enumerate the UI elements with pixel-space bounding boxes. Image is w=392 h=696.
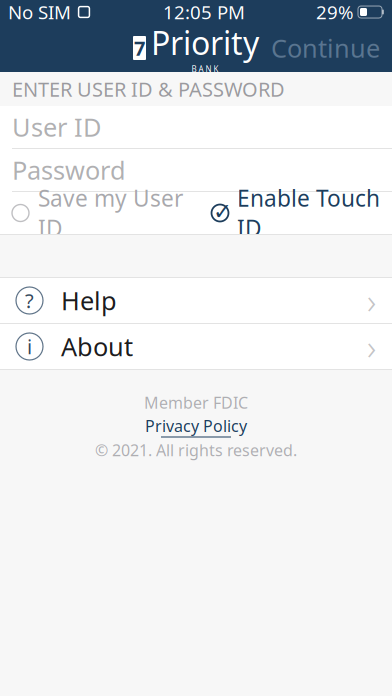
staticText: Continue [271, 31, 380, 65]
staticText: 7 [134, 35, 145, 61]
staticText: Save my User ID [38, 183, 183, 243]
staticText: ✓ [213, 199, 232, 224]
staticText: 29% [316, 0, 354, 24]
button[interactable]: Privacy Policy [145, 415, 247, 437]
staticText: 12:05 PM [163, 0, 245, 24]
staticText: ? [25, 287, 34, 314]
staticText: Member FDIC [144, 392, 248, 413]
staticText: Priority [151, 21, 259, 64]
staticText: Privacy Policy [145, 415, 247, 436]
staticText: © 2021. All rights reserved. [95, 439, 297, 461]
button[interactable]: Continue [259, 23, 392, 73]
staticText: User ID [12, 110, 101, 144]
staticText: About [61, 330, 133, 363]
staticText: No SIM [8, 0, 71, 24]
button[interactable]: i [0, 324, 392, 370]
staticText: ENTER USER ID & PASSWORD [12, 76, 285, 102]
staticText: i [27, 333, 32, 360]
staticText: › [367, 277, 376, 323]
staticText: B A N K [191, 64, 218, 74]
staticText: Password [12, 153, 126, 187]
staticText: › [367, 323, 376, 369]
staticText: Enable Touch ID [237, 183, 380, 243]
button[interactable]: Save my User ID [12, 175, 183, 251]
staticText: Help [61, 284, 117, 317]
button[interactable]: ? [0, 278, 392, 324]
button[interactable]: ✓ [210, 175, 380, 251]
